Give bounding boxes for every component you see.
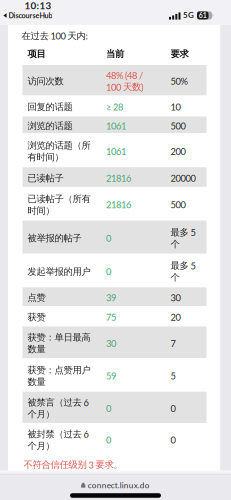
staticText: 21816 (106, 172, 131, 184)
staticText: 30 (170, 292, 180, 303)
staticText: 75 (106, 312, 116, 323)
staticText: 最多 5 个 (170, 260, 195, 283)
staticText: 1061 (106, 120, 126, 131)
staticText: 要求 (170, 48, 188, 60)
staticText: 项目 (27, 48, 45, 60)
staticText: 获赞：单日最高 数量 (27, 331, 90, 355)
staticText: 0 (106, 434, 111, 445)
staticText: 回复的话题 (27, 101, 72, 113)
staticText: ≥ 28 (106, 101, 123, 113)
staticText: 59 (106, 370, 116, 381)
staticText: 在过去 100 天内: (21, 30, 87, 42)
staticText: 10 (170, 101, 180, 113)
staticText: 已读帖子 (27, 172, 63, 184)
staticText: 50% (170, 76, 187, 87)
staticText: 5G (183, 10, 194, 20)
staticText: 0 (106, 403, 111, 414)
staticText: DiscourseHub (8, 11, 52, 20)
staticText: 浏览的话题（所 有时间） (27, 139, 90, 163)
staticText: 10:13 (24, 0, 51, 11)
button[interactable]: Address bar: connect.linux.do (81, 475, 150, 490)
staticText: 被禁言（过去 6 个月） (27, 396, 88, 420)
staticText: 0 (170, 434, 175, 445)
staticText: connect.linux.do (88, 480, 150, 490)
staticText: 48% (48 / 100 天数) (106, 70, 143, 93)
staticText: 当前 (106, 48, 124, 60)
staticText: 点赞 (27, 292, 45, 304)
staticText: 21816 (106, 199, 131, 210)
staticText: 被封禁（过去 6 个月） (27, 428, 88, 452)
staticText: 500 (170, 199, 185, 210)
button[interactable]: Back to DiscourseHub (0, 0, 52, 20)
staticText: 0 (106, 232, 111, 244)
staticText: 1061 (106, 146, 126, 157)
staticText: 20 (170, 312, 180, 323)
staticText: 被举报的帖子 (27, 232, 81, 244)
staticText: 61 (199, 11, 207, 20)
staticText: 已读帖子（所有 时间） (27, 193, 90, 216)
staticText: 20000 (170, 172, 195, 184)
staticText: 获赞：点赞用户 数量 (27, 364, 90, 388)
staticText: 不符合信任级别 3 要求。 (23, 459, 122, 471)
staticText: 7 (170, 338, 175, 349)
staticText: 发起举报的用户 (27, 266, 90, 277)
staticText: 39 (106, 292, 116, 303)
staticText: 访问次数 (27, 75, 63, 87)
staticText: 500 (170, 120, 185, 131)
staticText: 0 (106, 266, 111, 277)
staticText: 30 (106, 338, 116, 349)
staticText: 0 (170, 403, 175, 414)
staticText: 5 (170, 370, 175, 381)
staticText: 200 (170, 146, 185, 157)
staticText: 获赞 (27, 311, 45, 323)
staticText: 浏览的话题 (27, 120, 72, 132)
staticText: 最多 5 个 (170, 226, 195, 250)
